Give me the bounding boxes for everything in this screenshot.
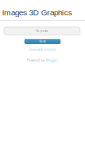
button[interactable]: Blogger [46,58,58,62]
staticText: Images 3D Graphics [2,8,72,17]
button[interactable]: Home [24,39,60,44]
button[interactable]: View web version [29,48,56,51]
staticText: Powered by [27,58,45,62]
staticText: Blogger [46,58,58,62]
staticText: Home [38,40,46,43]
staticText: View web version [29,48,56,51]
staticText: No posts. [35,29,48,33]
